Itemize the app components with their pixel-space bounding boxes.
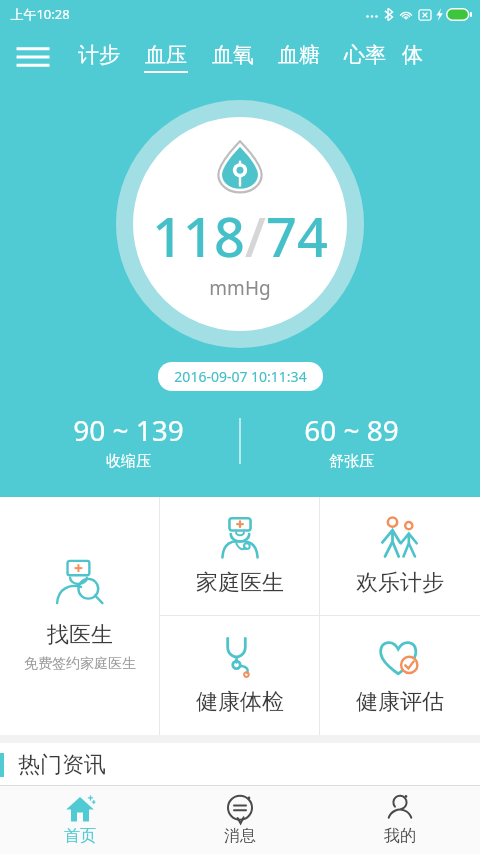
staticText: 首页 [64,826,96,846]
button[interactable]: Menu [0,28,66,86]
staticText: 舒张压 [329,452,374,471]
staticText: 上午10:28 [10,5,70,23]
staticText: 血压 [145,42,187,68]
staticText: / [245,199,266,273]
staticText: 找医生 [47,621,113,649]
button[interactable]: 家庭医生 [160,497,319,615]
button[interactable]: 计步 [66,28,132,86]
button[interactable]: 心率 [332,28,398,86]
button[interactable]: 找医生 [0,497,159,735]
staticText: 体 [402,42,423,68]
staticText: 免费签约家庭医生 [24,655,136,673]
staticText: 118 [152,199,245,273]
staticText: 计步 [78,42,120,68]
button[interactable]: 我的 [320,786,480,854]
staticText: 血氧 [212,42,254,68]
staticText: 健康评估 [356,688,444,716]
button[interactable]: 血氧 [200,28,266,86]
button[interactable]: 健康评估 [320,616,480,735]
staticText: 60 ~ 89 [304,411,399,449]
staticText: 74 [266,199,328,273]
staticText: 收缩压 [106,452,151,471]
staticText: 心率 [344,42,386,68]
staticText: 我的 [384,826,416,846]
button[interactable]: 2016-09-07 10:11:34 [158,362,323,391]
staticText: 热门资讯 [18,751,106,779]
staticText: 90 ~ 139 [73,411,184,449]
button[interactable]: 血糖 [266,28,332,86]
button[interactable]: 首页 [0,786,160,854]
button[interactable]: 欢乐计步 [320,497,480,615]
staticText: 欢乐计步 [356,569,444,597]
staticText: 血糖 [278,42,320,68]
staticText: 消息 [224,826,256,846]
button[interactable]: 热门资讯 [0,743,480,787]
staticText: mmHg [209,275,271,301]
button[interactable]: 消息 [160,786,320,854]
button[interactable]: 健康体检 [160,616,319,735]
staticText: 2016-09-07 10:11:34 [174,367,307,386]
staticText: 健康体检 [196,688,284,716]
button[interactable]: 体 [398,28,427,86]
staticText: 家庭医生 [196,569,284,597]
button[interactable]: 血压 [132,28,200,86]
